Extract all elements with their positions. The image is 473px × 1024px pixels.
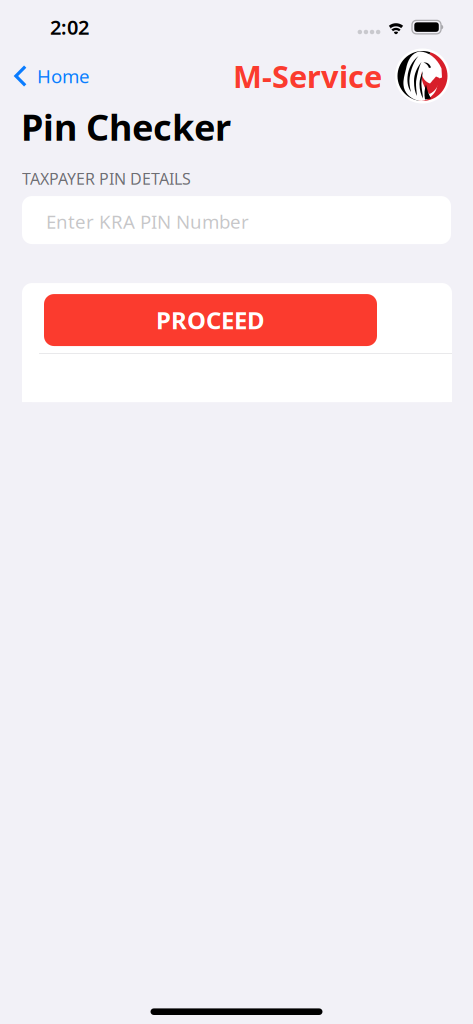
- staticText: M-Service: [233, 56, 382, 96]
- staticText: TAXPAYER PIN DETAILS: [22, 168, 191, 189]
- button[interactable]: M-Service home: [233, 51, 473, 101]
- staticText: 2:02: [50, 14, 89, 40]
- staticText: Home: [37, 64, 90, 88]
- staticText: Pin Checker: [21, 103, 231, 151]
- staticText: Enter KRA PIN Number: [46, 209, 249, 234]
- staticText: PROCEED: [156, 304, 265, 336]
- button[interactable]: Home: [0, 54, 102, 98]
- button[interactable]: PROCEED: [44, 294, 377, 346]
- button[interactable]: Enter KRA PIN Number: [22, 196, 451, 244]
